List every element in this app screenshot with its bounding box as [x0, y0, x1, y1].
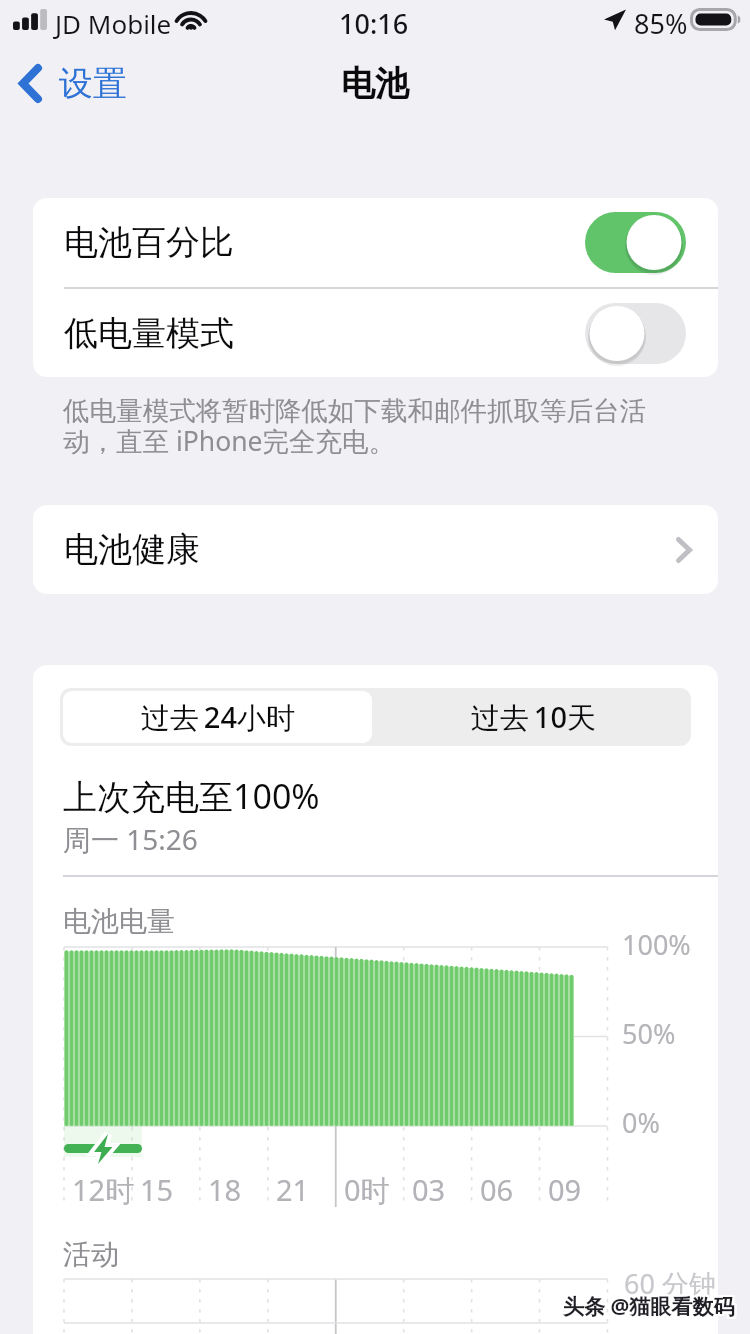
staticText: 动，直至 iPhone完全充电。	[63, 423, 395, 459]
staticText: 头条 @猫眼看数码	[563, 1292, 735, 1321]
staticText: 头条 @猫眼看数码	[565, 1292, 737, 1321]
staticText: 100%	[622, 926, 691, 963]
staticText: 头条 @猫眼看数码	[565, 1290, 737, 1319]
other: 打开电池健康	[676, 537, 692, 563]
staticText: 周一 15:26	[63, 820, 198, 858]
staticText: 上次充电至100%	[63, 773, 320, 819]
staticText: 过去 10天	[471, 697, 596, 737]
staticText: 头条 @猫眼看数码	[563, 1294, 735, 1323]
staticText: 0%	[622, 1104, 660, 1141]
staticText: JD Mobile	[55, 6, 172, 41]
staticText: 头条 @猫眼看数码	[563, 1290, 735, 1319]
staticText: 06	[480, 1170, 514, 1209]
staticText: 85%	[634, 5, 688, 42]
staticText: 12时	[72, 1170, 135, 1210]
staticText: 头条 @猫眼看数码	[561, 1290, 733, 1319]
button[interactable]: 过去 10天	[375, 688, 691, 746]
button[interactable]: 低电量模式	[64, 289, 686, 377]
staticText: 过去 24小时	[141, 697, 295, 737]
staticText: 设置	[59, 62, 127, 105]
staticText: 10:16	[339, 5, 409, 42]
staticText: 21	[276, 1170, 310, 1209]
staticText: 低电量模式	[64, 312, 234, 355]
button[interactable]: 过去 24小时	[63, 691, 372, 743]
staticText: 头条 @猫眼看数码	[565, 1294, 737, 1323]
button[interactable]: 电池健康	[33, 505, 718, 594]
staticText: 电池	[341, 62, 409, 105]
staticText: 18	[208, 1170, 242, 1209]
staticText: 头条 @猫眼看数码	[561, 1292, 733, 1321]
button[interactable]: 电池百分比	[64, 198, 686, 287]
staticText: 活动	[63, 1237, 119, 1272]
staticText: 电池电量	[63, 904, 175, 939]
staticText: 头条 @猫眼看数码	[561, 1294, 733, 1323]
staticText: 50%	[622, 1015, 676, 1052]
staticText: 60 分钟	[624, 1265, 716, 1302]
staticText: 低电量模式将暂时降低如下载和邮件抓取等后台活	[63, 394, 646, 427]
button[interactable]: 返回设置	[19, 62, 127, 105]
staticText: 15	[140, 1170, 174, 1209]
staticText: 电池健康	[64, 528, 200, 571]
staticText: 03	[412, 1170, 446, 1209]
staticText: 0时	[344, 1170, 390, 1210]
staticText: 09	[548, 1170, 582, 1209]
staticText: 电池百分比	[64, 221, 234, 264]
